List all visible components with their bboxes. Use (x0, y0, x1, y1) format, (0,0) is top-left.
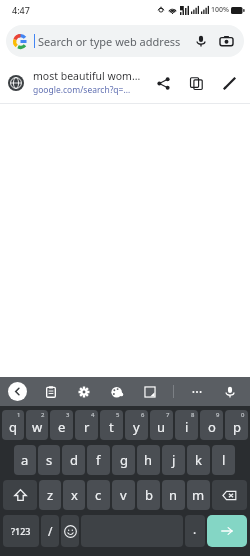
staticText: 6 (141, 411, 145, 419)
staticText: n (169, 486, 178, 504)
button[interactable]: p (225, 410, 248, 440)
staticText: 4 (91, 411, 95, 419)
button[interactable]: i (175, 410, 198, 440)
staticText: q (9, 418, 17, 436)
button[interactable]: Copy link (183, 70, 209, 96)
staticText: u (157, 418, 166, 436)
button[interactable]: Enter (207, 515, 247, 547)
staticText: z (47, 486, 54, 504)
staticText: 4:47 (12, 4, 30, 16)
staticText: r (84, 418, 90, 436)
button[interactable]: j (162, 445, 185, 475)
staticText: e (58, 418, 66, 436)
staticText: g (120, 451, 128, 469)
staticText: h (144, 451, 153, 469)
button[interactable]: Google Lens (215, 30, 237, 52)
staticText: ?123 (11, 525, 31, 537)
button[interactable]: g (112, 445, 135, 475)
button[interactable]: h (137, 445, 160, 475)
staticText: Search or type web address (38, 34, 190, 49)
staticText: 8 (191, 411, 195, 419)
button[interactable]: o (200, 410, 223, 440)
button[interactable]: w (26, 410, 48, 440)
button[interactable]: Emoji (61, 515, 79, 547)
button[interactable]: k (187, 445, 210, 475)
button[interactable]: f (87, 445, 110, 475)
button[interactable]: n (162, 480, 185, 510)
staticText: i (185, 418, 189, 436)
staticText: l (222, 451, 226, 469)
staticText: j (172, 451, 176, 469)
staticText: c (95, 486, 102, 504)
button[interactable]: z (39, 480, 61, 510)
staticText: o (208, 418, 216, 436)
button[interactable]: t (100, 410, 123, 440)
button[interactable]: y (125, 410, 148, 440)
button[interactable]: Edit query (216, 70, 242, 96)
staticText: b (145, 486, 153, 504)
staticText: 5 (116, 411, 120, 419)
button[interactable]: q (2, 410, 24, 440)
button[interactable]: x (63, 480, 85, 510)
button[interactable]: Settings (74, 382, 94, 402)
staticText: k (195, 451, 202, 469)
staticText: y (133, 418, 140, 436)
button[interactable]: u (150, 410, 173, 440)
button[interactable]: b (137, 480, 160, 510)
staticText: 3 (66, 411, 70, 419)
staticText: 100% (211, 5, 229, 15)
staticText: m (192, 486, 205, 504)
button[interactable]: Search or type web address (6, 25, 244, 57)
button[interactable]: d (62, 445, 85, 475)
staticText: 9 (216, 411, 220, 419)
button[interactable]: v (112, 480, 135, 510)
button[interactable]: s (38, 445, 60, 475)
button[interactable]: e (50, 410, 73, 440)
button[interactable]: Voice input (220, 382, 240, 402)
button[interactable]: Share (150, 70, 176, 96)
button[interactable]: Shift (3, 480, 37, 510)
button[interactable]: c (87, 480, 110, 510)
staticText: 1 (17, 411, 21, 419)
button[interactable]: Backspace (212, 480, 247, 510)
staticText: x (71, 486, 78, 504)
button[interactable]: ?123 (3, 515, 39, 547)
button[interactable]: Clipboard (41, 382, 61, 402)
button[interactable]: m (187, 480, 210, 510)
button[interactable]: Themes (107, 382, 127, 402)
staticText: f (96, 451, 101, 469)
button[interactable]: . (185, 515, 205, 547)
staticText: 7 (166, 411, 170, 419)
staticText: most beautiful wom… (33, 69, 141, 83)
staticText: p (233, 418, 241, 436)
button[interactable]: Voice search (190, 30, 212, 52)
staticText: 0 (241, 411, 245, 419)
staticText: w (32, 418, 43, 436)
button[interactable]: r (75, 410, 98, 440)
staticText: . (193, 521, 197, 537)
staticText: a (21, 451, 29, 469)
button[interactable]: a (14, 445, 36, 475)
staticText: 2 (41, 411, 45, 419)
button[interactable]: / (41, 515, 59, 547)
button[interactable]: l (212, 445, 235, 475)
staticText: s (46, 451, 53, 469)
staticText: google.com/search?q=… (33, 84, 131, 96)
staticText: t (109, 418, 114, 436)
button[interactable]: most beautiful wom… (0, 62, 250, 103)
button[interactable]: More options (187, 382, 207, 402)
staticText: d (70, 451, 78, 469)
staticText: / (48, 523, 53, 539)
button[interactable]: Back (8, 382, 27, 401)
staticText: v (120, 486, 127, 504)
button[interactable]: Stickers (140, 382, 160, 402)
